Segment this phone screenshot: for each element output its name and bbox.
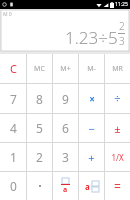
staticText: 11:25 [115,1,128,8]
staticText: ÷ [114,91,121,106]
staticText: M 0 [3,11,12,18]
button[interactable]: ± [105,114,130,142]
staticText: × [89,92,95,106]
staticText: + [88,150,95,165]
button[interactable]: 2 [27,143,52,171]
button[interactable]: 9 [53,84,78,113]
staticText: M+ [60,64,71,74]
button[interactable]: 4 [0,114,26,142]
button[interactable]: ÷ [105,84,130,113]
staticText: 8 [36,91,43,107]
button[interactable]: + [79,143,104,171]
staticText: 5 [36,120,43,136]
button[interactable]: 8 [27,84,52,113]
staticText: 7 [10,91,17,107]
staticText: 0 [10,178,17,194]
staticText: = [114,178,121,194]
button[interactable]: C [0,54,26,83]
staticText: 1/X [111,152,124,163]
staticText: 3 [119,34,125,48]
button[interactable]: MR [105,54,130,83]
button[interactable]: 0 [0,172,26,200]
staticText: MR [112,64,123,74]
button[interactable]: Fraction [53,172,78,200]
staticText: 2 [119,19,125,33]
staticText: 2 [36,149,43,165]
button[interactable]: Mixed number [79,172,104,200]
button[interactable]: 6 [53,114,78,142]
staticText: 4 [10,120,17,136]
button[interactable]: 1/X [105,143,130,171]
button[interactable]: 5 [27,114,52,142]
staticText: 9 [62,91,69,107]
staticText: 1 [10,149,17,165]
button[interactable]: 1 [0,143,26,171]
button[interactable]: − [79,114,104,142]
staticText: C [10,61,17,76]
button[interactable]: M+ [53,54,78,83]
staticText: 3 [62,149,69,165]
staticText: ± [114,121,121,136]
button[interactable]: 7 [0,84,26,113]
staticText: 6 [62,120,69,136]
button[interactable]: = [105,172,130,200]
staticText: a [85,181,90,192]
button[interactable]: Decimal point [27,172,52,200]
staticText: M- [87,64,96,74]
button[interactable]: × [79,84,104,113]
button[interactable]: M- [79,54,104,83]
button[interactable]: 3 [53,143,78,171]
button[interactable]: MC [27,54,52,83]
staticText: 1.23÷5 [65,26,118,49]
staticText: a [63,185,68,195]
staticText: MC [34,64,45,74]
staticText: − [88,121,95,136]
